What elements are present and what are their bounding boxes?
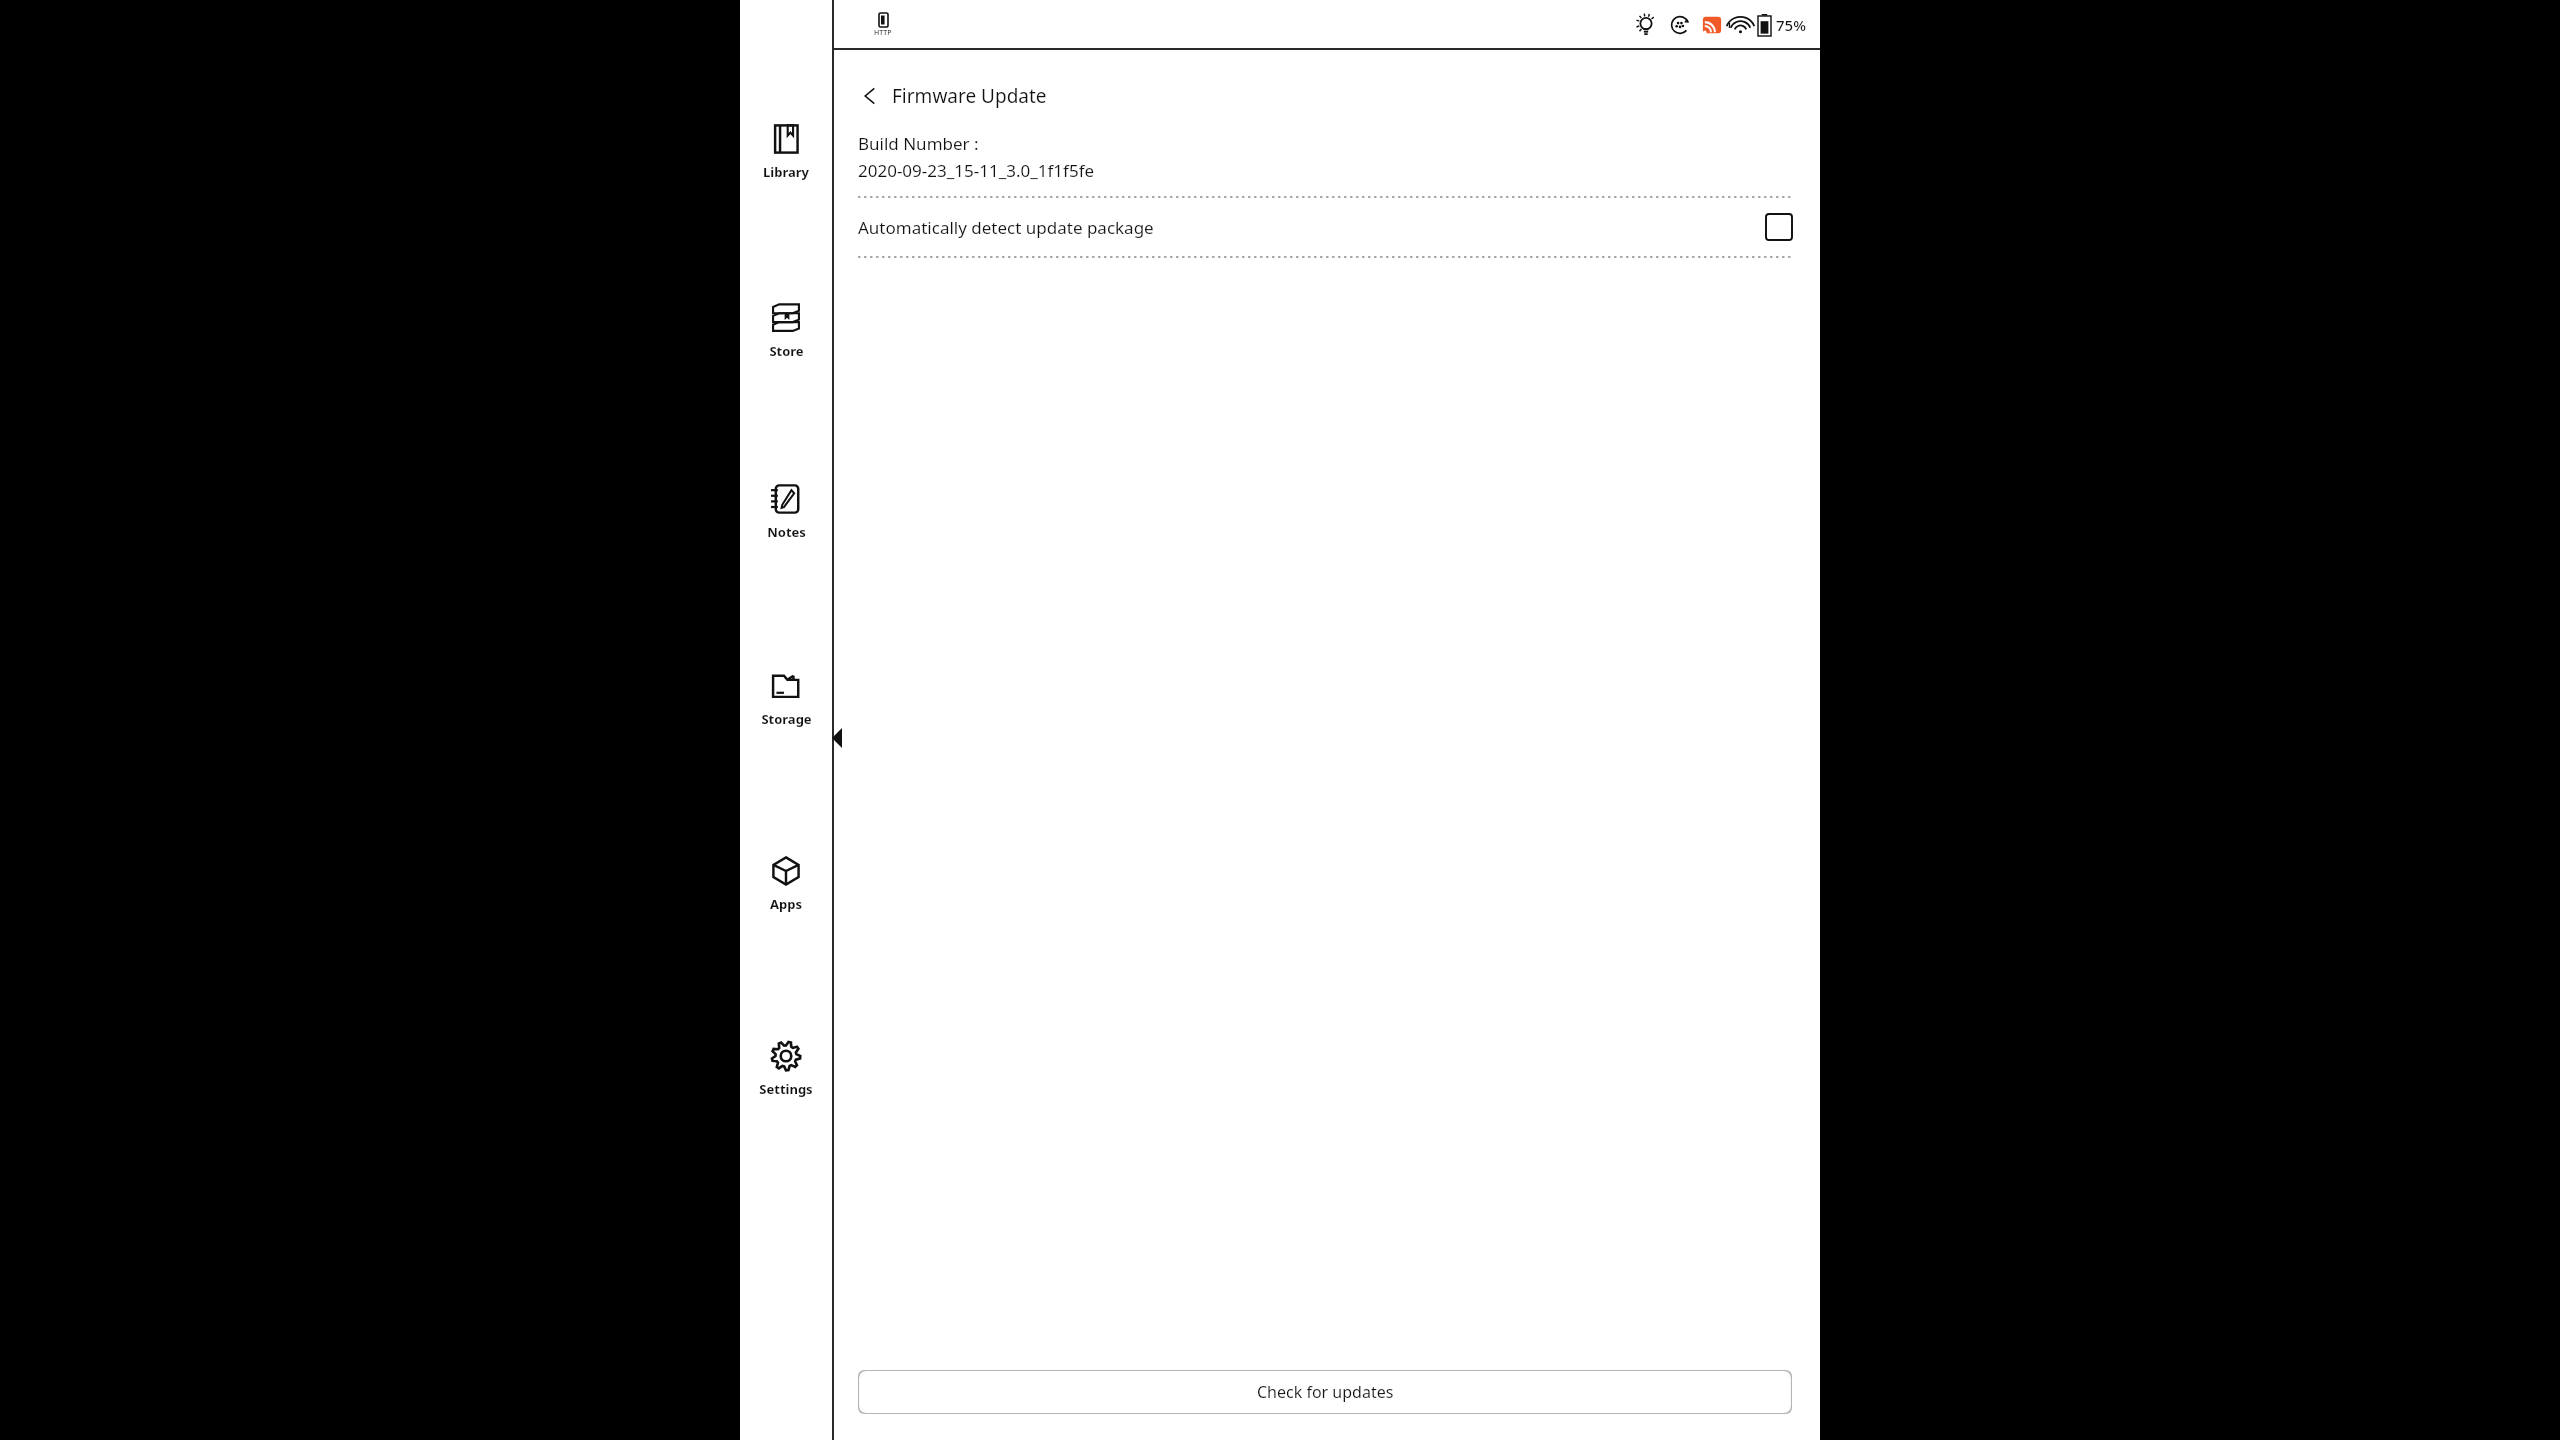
other: Automatically detect update package chec…	[1766, 214, 1792, 240]
staticText: Build Number :	[858, 132, 979, 155]
staticText: Storage	[761, 710, 812, 728]
button[interactable]: Automatically detect update package	[858, 198, 1792, 256]
other: Wi-Fi	[1728, 13, 1752, 37]
button[interactable]: Store	[740, 301, 832, 360]
other: Cast	[1700, 13, 1724, 37]
staticText: Store	[769, 342, 804, 360]
staticText: Apps	[770, 895, 802, 913]
button[interactable]: Settings	[740, 1039, 832, 1098]
staticText: 75%	[1776, 15, 1806, 35]
staticText: Notes	[767, 523, 806, 541]
button[interactable]: Back	[858, 74, 1792, 118]
other: Refresh mode	[1668, 13, 1692, 37]
staticText: Check for updates	[1257, 1381, 1394, 1403]
button[interactable]: Notes	[740, 482, 832, 541]
staticText: Automatically detect update package	[858, 216, 1766, 239]
button[interactable]: Storage	[740, 669, 832, 728]
button[interactable]: Apps	[740, 854, 832, 913]
staticText: Firmware Update	[892, 83, 1047, 109]
staticText: 2020-09-23_15-11_3.0_1f1f5fe	[858, 159, 1095, 182]
button[interactable]: Check for updates	[858, 1370, 1792, 1414]
staticText: HTTP	[874, 28, 892, 38]
staticText: Settings	[759, 1080, 813, 1098]
button[interactable]: Library	[740, 122, 832, 181]
other: Back	[858, 84, 882, 108]
staticText: Library	[763, 163, 809, 181]
other: Front light	[1634, 13, 1658, 37]
